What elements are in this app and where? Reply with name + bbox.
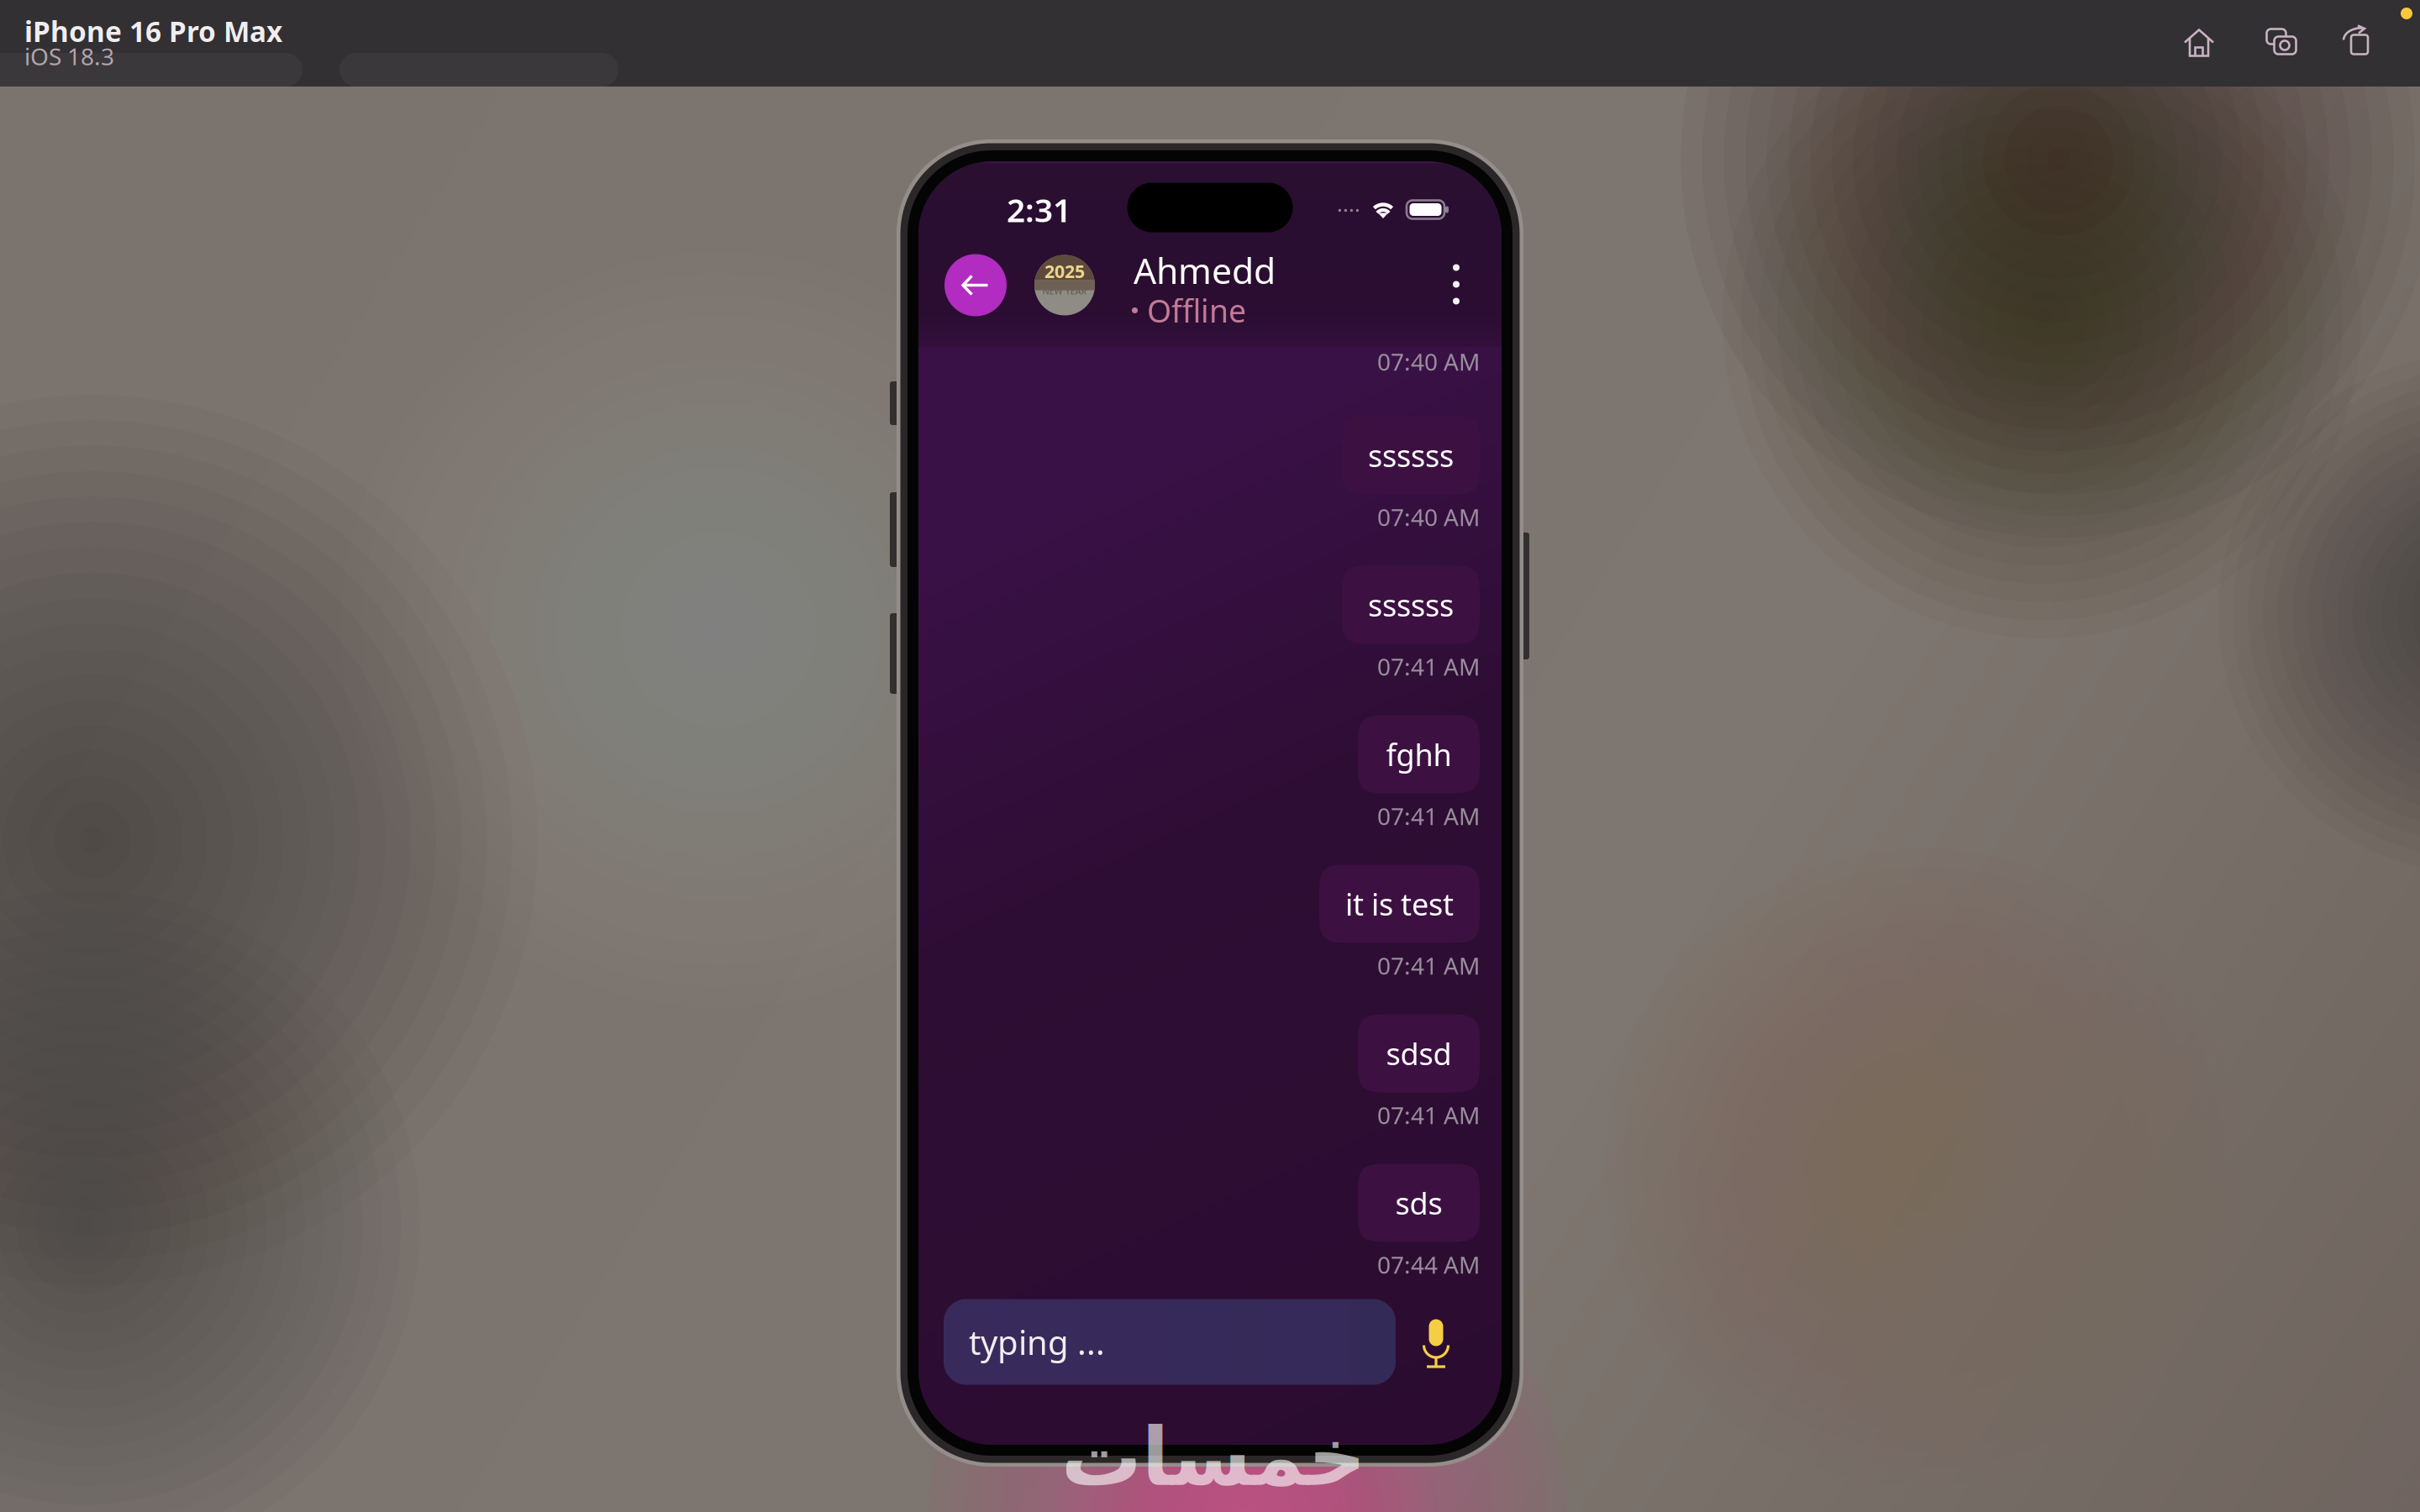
staticText: 07:40 AM <box>1377 346 1480 377</box>
staticText: it is test <box>1345 884 1454 924</box>
staticText: sds <box>1395 1183 1442 1223</box>
staticText: ssssss <box>1368 435 1454 475</box>
button[interactable]: Home <box>2182 28 2216 58</box>
staticText: Offline <box>1147 290 1246 331</box>
button[interactable]: Screenshot <box>2264 27 2302 57</box>
staticText: 07:40 AM <box>1377 501 1480 533</box>
staticText: 2:31 <box>1007 188 1071 231</box>
staticText: fghh <box>1386 734 1452 774</box>
staticText: 07:41 AM <box>1377 800 1480 832</box>
button[interactable]: Record voice message <box>1402 1299 1470 1385</box>
staticText: Ahmedd <box>1134 246 1276 294</box>
staticText: iOS 18.3 <box>24 41 114 72</box>
button[interactable]: More options <box>1429 248 1483 320</box>
staticText: iPhone 16 Pro Max <box>24 13 282 50</box>
button[interactable]: Back <box>944 254 1007 316</box>
staticText: خمسات <box>1060 1411 1365 1503</box>
staticText: NEW YEAR <box>1042 285 1087 297</box>
staticText: typing ... <box>969 1320 1105 1364</box>
staticText: ssssss <box>1368 585 1454 625</box>
staticText: 2025 <box>1044 259 1085 283</box>
button[interactable]: typing ... <box>944 1299 1396 1385</box>
staticText: 07:44 AM <box>1377 1249 1480 1280</box>
staticText: sdsd <box>1386 1033 1452 1073</box>
staticText: ···· <box>1337 195 1360 224</box>
staticText: 07:41 AM <box>1377 651 1480 682</box>
staticText: 07:41 AM <box>1377 1099 1480 1131</box>
staticText: 07:41 AM <box>1377 950 1480 981</box>
button[interactable]: Rotate <box>2343 24 2373 56</box>
